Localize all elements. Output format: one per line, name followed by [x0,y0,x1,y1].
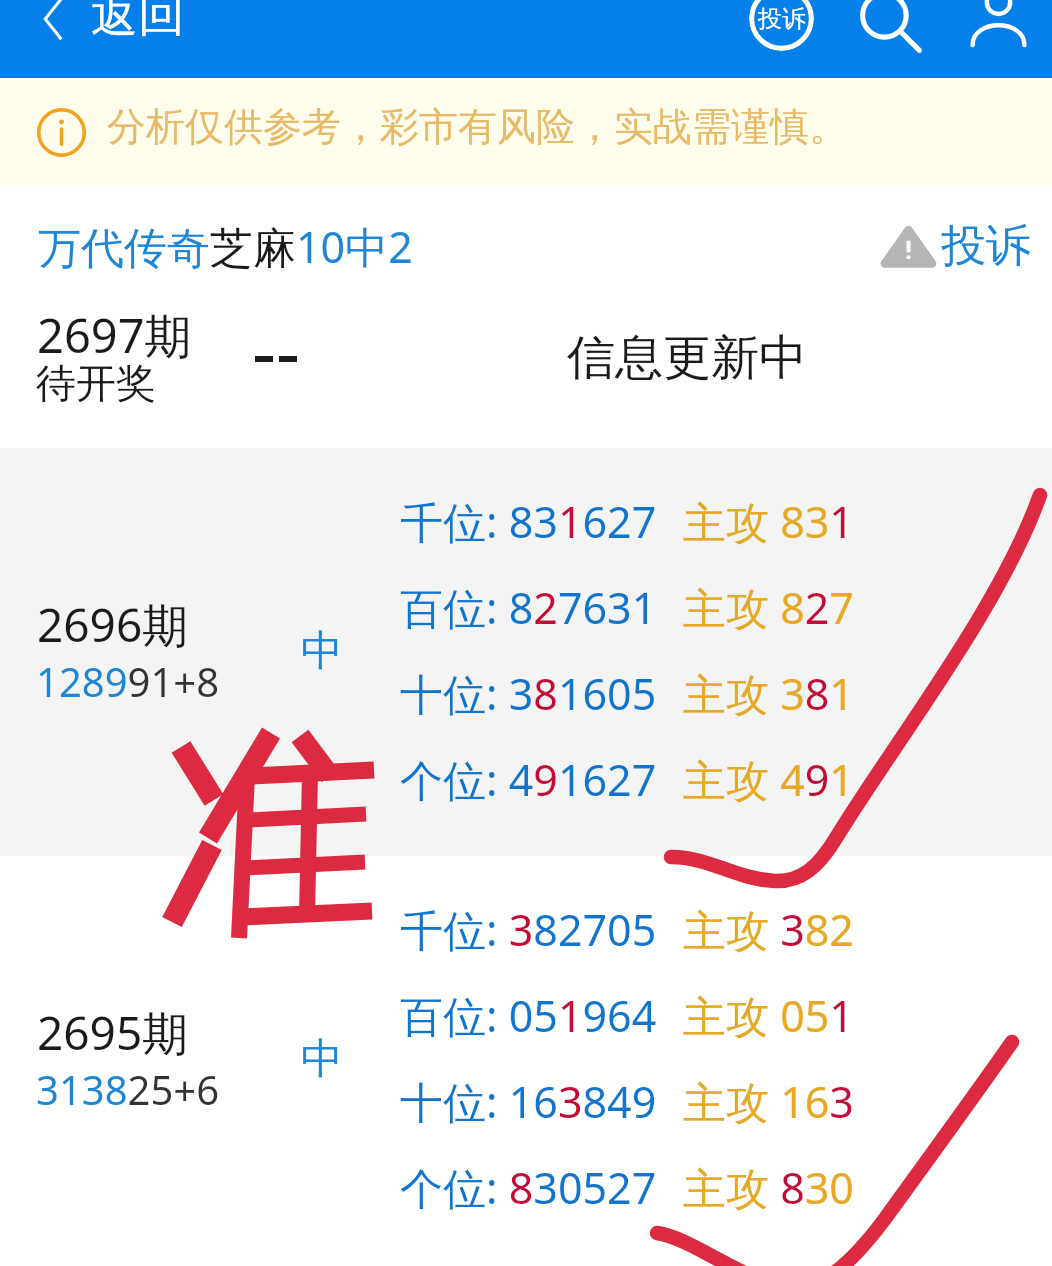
staticText: 主攻 830 [683,1158,854,1217]
staticText: 百位: 827631 [400,578,657,637]
staticText: 千位: 831627 [400,492,657,551]
staticText: 主攻 491 [683,750,854,809]
staticText: 万代传奇芝麻10中2 [38,217,413,276]
staticText: 投诉 [758,4,806,34]
staticText: 十位: 163849 [400,1072,657,1131]
staticText: 分析仅供参考，彩市有风险，实战需谨慎。 [107,102,848,151]
button[interactable]: 投诉 [881,218,1031,275]
staticText: 待开奖 [36,358,156,408]
staticText: 个位: 830527 [400,1158,657,1217]
staticText: 十位: 381605 [400,664,657,723]
staticText: 主攻 163 [683,1072,854,1131]
staticText: 信息更新中 [567,328,807,388]
staticText: 百位: 051964 [400,986,657,1045]
staticText: 2697期 [37,303,192,367]
staticText: 中 [301,1033,343,1086]
staticText: 主攻 051 [683,986,854,1045]
staticText: 投诉 [941,218,1031,275]
button[interactable]: 我的 [970,0,1027,45]
staticText: 主攻 831 [683,492,854,551]
button[interactable]: 投诉 [749,0,814,51]
staticText: 千位: 382705 [400,900,657,959]
staticText: 2696期 [37,593,189,656]
staticText: 主攻 382 [683,900,854,959]
staticText: 主攻 827 [683,578,854,637]
staticText: 返回 [91,0,185,45]
staticText: 主攻 381 [683,664,854,723]
staticText: 中 [301,625,343,678]
staticText: 2695期 [37,1001,189,1064]
button[interactable]: 返回 [40,0,185,45]
staticText: 个位: 491627 [400,750,657,809]
button[interactable]: 搜索 [858,0,924,55]
staticText: 128991+8 [36,654,220,708]
staticText: 313825+6 [36,1062,220,1116]
